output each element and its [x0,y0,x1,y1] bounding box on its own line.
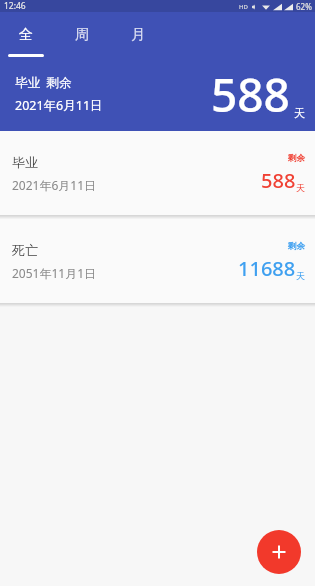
button[interactable]: 周 [64,12,100,57]
staticText: 62% [296,1,312,12]
staticText: 11688 [238,255,296,282]
staticText: 2021年6月11日 [15,97,103,114]
staticText: 天 [296,182,305,193]
staticText: 588 [211,63,290,126]
button[interactable]: 全 [8,12,44,57]
staticText: 588 [261,167,296,194]
staticText: 2051年11月1日 [12,265,97,281]
button[interactable]: 死亡 [0,219,315,303]
staticText: 天 [294,106,305,120]
staticText: 剩余 [288,241,305,252]
staticText: 12:46 [4,0,26,12]
button[interactable]: Add countdown [257,530,301,574]
staticText: HD [239,3,248,11]
button[interactable]: 毕业 剩余 [0,57,315,131]
staticText: 毕业 [12,154,38,170]
staticText: 剩余 [288,153,305,164]
staticText: 死亡 [12,242,38,258]
staticText: 天 [296,270,305,281]
staticText: 2021年6月11日 [12,177,97,193]
staticText: 周 [75,26,89,44]
button[interactable]: 月 [120,12,156,57]
staticText: 毕业 剩余 [15,74,72,91]
staticText: 全 [19,26,33,44]
staticText: 月 [131,26,145,44]
button[interactable]: 毕业 [0,131,315,215]
